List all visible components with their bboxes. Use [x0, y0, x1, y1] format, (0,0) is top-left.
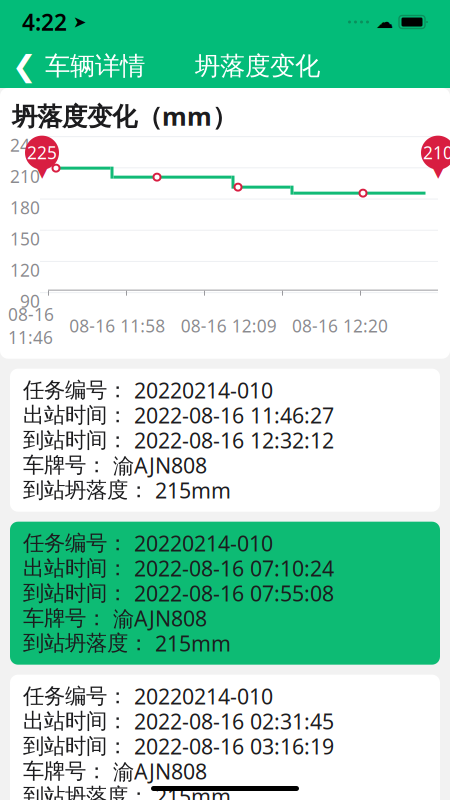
staticText: ➤ — [67, 13, 86, 31]
staticText: 2022-08-16 02:31:45 — [128, 707, 334, 735]
staticText: 到站时间： — [23, 580, 128, 606]
staticText: 150 — [10, 227, 40, 250]
staticText: ❮ — [12, 49, 37, 83]
staticText: 225 — [27, 141, 57, 164]
staticText: 出站时间： — [23, 555, 128, 581]
staticText: 120 — [10, 258, 40, 281]
staticText: 出站时间： — [23, 402, 128, 428]
staticText: 渝AJN808 — [107, 604, 207, 632]
staticText: 到站坍落度： — [23, 783, 149, 800]
staticText: 4:22 — [22, 7, 67, 37]
staticText: 20220214-010 — [128, 376, 273, 404]
staticText: 车辆详情 — [45, 50, 145, 81]
button[interactable]: ❮ — [0, 44, 157, 88]
staticText: 坍落度变化 — [195, 50, 320, 81]
staticText: 215mm — [149, 782, 231, 800]
staticText: 210 — [423, 141, 450, 164]
staticText: ▼ — [429, 155, 446, 181]
staticText: 出站时间： — [23, 708, 128, 734]
staticText: 20220214-010 — [128, 529, 273, 557]
button[interactable]: 任务编号： — [10, 369, 440, 512]
staticText: 08-16 12:09 — [181, 314, 277, 337]
staticText: 2022-08-16 07:10:24 — [128, 554, 334, 582]
button[interactable]: 任务编号： — [10, 675, 440, 800]
staticText: 2022-08-16 03:16:19 — [128, 732, 334, 760]
staticText: 任务编号： — [23, 377, 128, 403]
staticText: 210 — [10, 165, 40, 188]
staticText: 到站时间： — [23, 733, 128, 759]
staticText: 任务编号： — [23, 530, 128, 556]
staticText: 08-16 12:20 — [292, 314, 388, 337]
staticText: 180 — [10, 196, 40, 219]
staticText: 到站坍落度： — [23, 477, 149, 503]
staticText: 2022-08-16 07:55:08 — [128, 579, 334, 607]
staticText: ☁ — [376, 12, 393, 32]
button[interactable]: 任务编号： — [10, 522, 440, 665]
staticText: 渝AJN808 — [107, 451, 207, 479]
staticText: 任务编号： — [23, 683, 128, 709]
staticText: 渝AJN808 — [107, 757, 207, 785]
staticText: ▼ — [33, 155, 50, 181]
staticText: 到站坍落度： — [23, 630, 149, 656]
staticText: 2022-08-16 11:46:27 — [128, 401, 334, 429]
staticText: 车牌号： — [23, 758, 107, 784]
staticText: 车牌号： — [23, 452, 107, 478]
staticText: 车牌号： — [23, 605, 107, 631]
staticText: 215mm — [149, 629, 231, 657]
staticText: 2022-08-16 12:32:12 — [128, 426, 334, 454]
staticText: 215mm — [149, 476, 231, 504]
staticText: 240 — [10, 134, 40, 157]
staticText: 90 — [20, 290, 40, 313]
staticText: 08-16 11:46 — [8, 303, 54, 349]
staticText: 到站时间： — [23, 427, 128, 453]
staticText: 20220214-010 — [128, 682, 273, 710]
staticText: 08-16 11:58 — [69, 314, 165, 337]
staticText: 坍落度变化（mm） — [12, 99, 237, 133]
